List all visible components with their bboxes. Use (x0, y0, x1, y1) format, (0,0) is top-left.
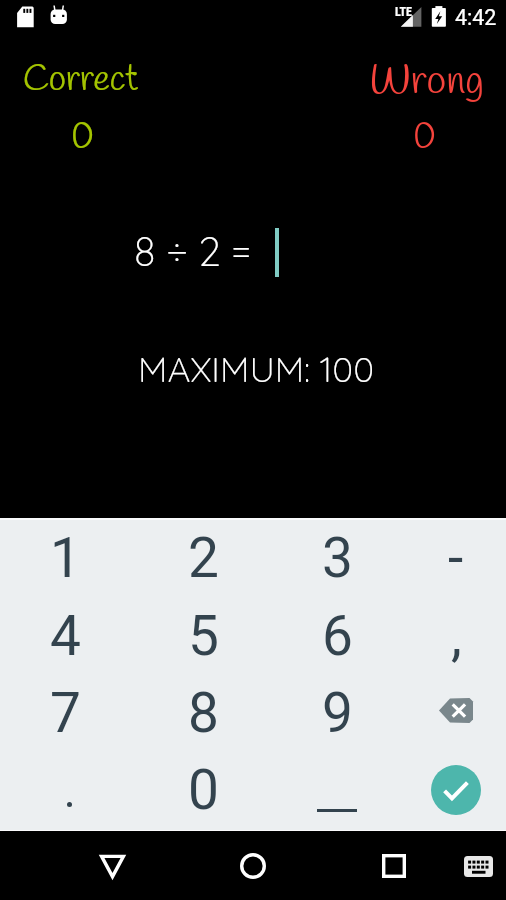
button[interactable]: 6 (277, 597, 397, 675)
button[interactable]: 1 (5, 519, 125, 597)
button[interactable]: 8 (143, 674, 263, 752)
button[interactable]: Recents (364, 844, 424, 888)
staticText: 0 (2, 114, 163, 161)
button[interactable]: Space (277, 751, 397, 829)
staticText: 1 (50, 526, 81, 590)
staticText: - (448, 526, 464, 590)
button[interactable]: 7 (5, 674, 125, 752)
button[interactable]: - (396, 519, 506, 597)
staticText: Correct (0, 57, 161, 104)
button[interactable]: Home (223, 844, 283, 888)
button[interactable]: Submit answer (396, 751, 506, 829)
staticText: 0 (188, 758, 219, 822)
button[interactable]: 9 (277, 674, 397, 752)
staticText: 8 ÷ 2 = (134, 226, 252, 276)
button[interactable]: 0 (143, 751, 263, 829)
staticText: , (451, 604, 462, 668)
staticText: 4:42 (455, 5, 497, 30)
staticText: 8 (188, 681, 219, 745)
staticText: 0 (344, 114, 505, 161)
staticText: LTE (395, 5, 412, 19)
button[interactable]: 5 (143, 597, 263, 675)
staticText: 6 (322, 604, 353, 668)
button[interactable] (5, 751, 125, 829)
button[interactable]: Backspace (396, 674, 506, 752)
button[interactable]: Show keyboard (452, 844, 504, 888)
button[interactable]: 2 (143, 519, 263, 597)
staticText: 3 (322, 526, 353, 590)
staticText: 4 (50, 604, 81, 668)
staticText: 7 (50, 681, 81, 745)
staticText: 9 (322, 681, 353, 745)
button[interactable]: 4 (5, 597, 125, 675)
button[interactable]: 3 (277, 519, 397, 597)
staticText: 5 (188, 604, 219, 668)
staticText: Wrong (346, 56, 506, 109)
staticText: MAXIMUM: 100 (3, 346, 506, 390)
button[interactable]: , (396, 597, 506, 675)
button[interactable]: Back (82, 844, 142, 888)
staticText: 2 (188, 526, 219, 590)
